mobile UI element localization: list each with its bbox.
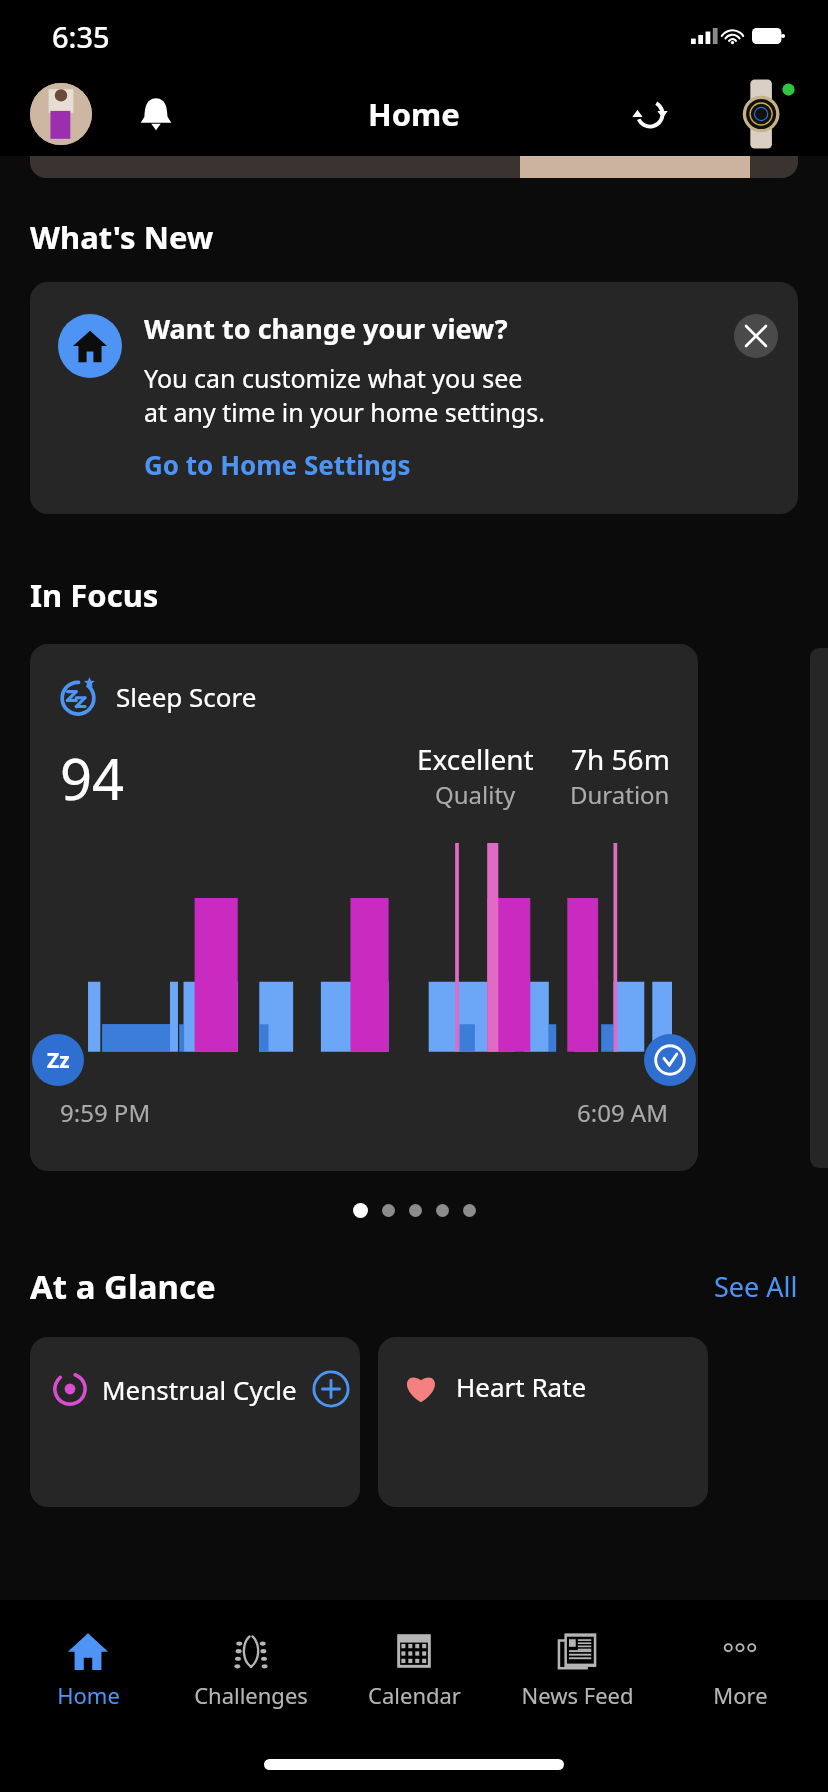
staticText: 6:09 AM bbox=[577, 1096, 668, 1129]
button[interactable]: Go to Home Settings bbox=[144, 447, 411, 482]
button[interactable]: Home bbox=[13, 1626, 163, 1714]
staticText: Sleep Score bbox=[116, 679, 257, 714]
staticText: Home bbox=[57, 1680, 120, 1710]
staticText: 9:59 PM bbox=[60, 1096, 151, 1129]
staticText: Challenges bbox=[194, 1680, 308, 1710]
button[interactable]: Device bbox=[728, 78, 800, 150]
staticText: Zz bbox=[47, 1046, 70, 1075]
staticText: Heart Rate bbox=[456, 1369, 587, 1404]
staticText: What's New bbox=[30, 216, 214, 258]
staticText: Want to change your view? bbox=[144, 310, 508, 347]
button[interactable]: Menstrual Cycle bbox=[30, 1337, 360, 1507]
staticText: Home bbox=[368, 93, 460, 135]
staticText: Calendar bbox=[368, 1680, 461, 1710]
staticText: Quality bbox=[435, 778, 516, 811]
staticText: At a Glance bbox=[30, 1264, 216, 1309]
button[interactable]: Sleep Score bbox=[30, 644, 698, 1171]
staticText: Excellent bbox=[417, 740, 534, 778]
staticText: 94 bbox=[60, 740, 125, 816]
button[interactable]: Log cycle bbox=[311, 1369, 351, 1409]
button[interactable]: News Feed bbox=[502, 1626, 652, 1714]
button[interactable]: Challenges bbox=[176, 1626, 326, 1714]
button[interactable]: Want to change your view? bbox=[30, 282, 798, 514]
button[interactable]: See All bbox=[714, 1268, 798, 1305]
staticText: News Feed bbox=[521, 1680, 634, 1710]
button[interactable]: Dismiss bbox=[734, 314, 778, 358]
button[interactable]: Notifications bbox=[128, 86, 184, 142]
staticText: Menstrual Cycle bbox=[102, 1372, 297, 1407]
staticText: Duration bbox=[570, 778, 670, 811]
button[interactable]: Profile bbox=[30, 83, 92, 145]
button[interactable]: More bbox=[665, 1626, 815, 1714]
button[interactable]: Calendar bbox=[339, 1626, 489, 1714]
staticText: 7h 56m bbox=[571, 740, 670, 778]
button[interactable]: Heart Rate bbox=[378, 1337, 708, 1507]
staticText: 6:35 bbox=[52, 17, 110, 56]
staticText: In Focus bbox=[30, 574, 159, 616]
staticText: You can customize what you see at any ti… bbox=[144, 361, 545, 429]
staticText: More bbox=[713, 1680, 768, 1710]
button[interactable]: Sync bbox=[622, 86, 678, 142]
